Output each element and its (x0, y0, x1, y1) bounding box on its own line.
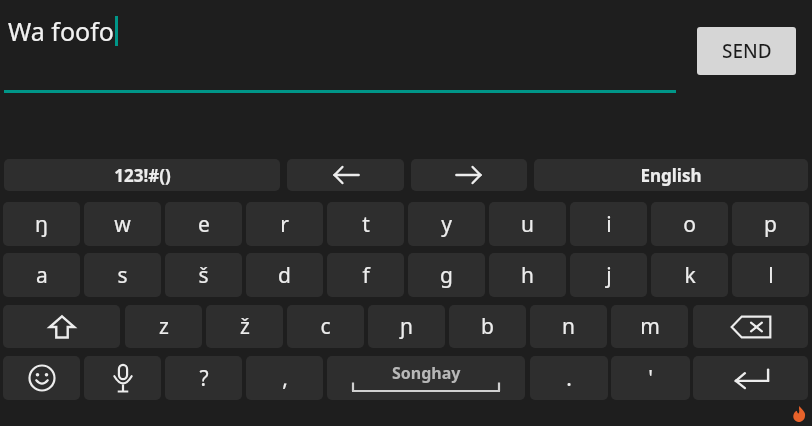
staticText: t (362, 210, 370, 239)
button[interactable]: English (534, 159, 808, 191)
button[interactable]: Backspace (693, 305, 808, 348)
button[interactable]: Keyboard status (788, 403, 810, 425)
button[interactable]: Previous (287, 159, 404, 191)
button[interactable]: w (84, 202, 161, 246)
button[interactable]: z (125, 305, 202, 348)
button[interactable]: b (449, 305, 526, 348)
button[interactable]: j (570, 253, 647, 297)
staticText: c (320, 312, 331, 341)
staticText: a (36, 261, 48, 290)
button[interactable]: Next (411, 159, 527, 191)
button[interactable]: ? (165, 356, 242, 400)
staticText: p (764, 210, 777, 239)
button[interactable]: ŋ (3, 202, 80, 246)
button[interactable]: SEND (697, 27, 796, 75)
button[interactable]: f (327, 253, 404, 297)
button[interactable]: h (489, 253, 566, 297)
staticText: o (683, 210, 696, 239)
staticText: w (114, 210, 131, 239)
staticText: s (117, 261, 128, 290)
staticText: i (606, 210, 612, 239)
staticText: š (198, 261, 209, 290)
staticText: k (684, 261, 696, 290)
button[interactable]: n (530, 305, 607, 348)
staticText: Wa foofo (8, 14, 114, 48)
staticText: f (362, 261, 370, 290)
staticText: e (198, 210, 210, 239)
staticText: ž (240, 312, 250, 341)
staticText: b (481, 312, 494, 341)
staticText: n (562, 312, 575, 341)
button[interactable]: , (246, 356, 323, 400)
button[interactable]: r (246, 202, 323, 246)
button[interactable]: Wa foofo (0, 0, 680, 100)
button[interactable]: t (327, 202, 404, 246)
button[interactable]: Shift (3, 305, 120, 348)
staticText: Songhay (392, 362, 461, 384)
button[interactable]: Enter (693, 356, 808, 400)
button[interactable]: Voice input (84, 356, 161, 400)
button[interactable]: ž (206, 305, 283, 348)
staticText: u (521, 210, 534, 239)
button[interactable]: l (732, 253, 809, 297)
staticText: m (640, 312, 660, 341)
button[interactable]: m (611, 305, 688, 348)
staticText: ŋ (35, 210, 48, 239)
staticText: . (566, 364, 572, 393)
staticText: 123!#() (114, 164, 171, 187)
staticText: SEND (722, 38, 772, 64)
staticText: g (440, 261, 453, 290)
staticText: ? (199, 364, 209, 393)
button[interactable]: g (408, 253, 485, 297)
staticText: y (441, 210, 452, 239)
staticText: l (768, 261, 774, 290)
button[interactable]: d (246, 253, 323, 297)
button[interactable]: k (651, 253, 728, 297)
staticText: r (280, 210, 289, 239)
button[interactable]: ɲ (368, 305, 445, 348)
staticText: English (640, 164, 702, 187)
button[interactable]: . (530, 356, 608, 400)
staticText: ' (648, 364, 653, 393)
staticText: j (606, 261, 612, 290)
button[interactable]: c (287, 305, 364, 348)
staticText: z (159, 312, 169, 341)
button[interactable]: a (3, 253, 80, 297)
button[interactable]: Emoji (3, 356, 80, 400)
button[interactable]: y (408, 202, 485, 246)
button[interactable]: š (165, 253, 242, 297)
button[interactable]: p (732, 202, 809, 246)
staticText: h (521, 261, 534, 290)
staticText: d (278, 261, 291, 290)
button[interactable]: e (165, 202, 242, 246)
button[interactable]: i (570, 202, 647, 246)
staticText: , (282, 364, 288, 393)
button[interactable]: u (489, 202, 566, 246)
button[interactable]: o (651, 202, 728, 246)
button[interactable]: 123!#() (4, 159, 280, 191)
button[interactable]: Space (327, 356, 525, 400)
button[interactable]: s (84, 253, 161, 297)
button[interactable]: ' (611, 356, 690, 400)
staticText: ɲ (400, 312, 413, 341)
